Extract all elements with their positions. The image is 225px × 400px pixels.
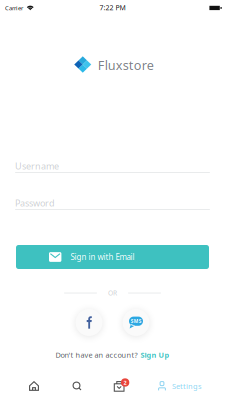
- button[interactable]: Don't have an account?: [55, 350, 169, 360]
- staticText: Fluxstore: [98, 56, 154, 74]
- staticText: 2: [124, 379, 127, 386]
- button[interactable]: Home: [12, 375, 55, 397]
- staticText: Don't have an account?: [55, 350, 137, 360]
- button[interactable]: Settings: [141, 375, 212, 397]
- staticText: Carrier: [5, 4, 23, 12]
- staticText: Sign Up: [140, 350, 169, 360]
- staticText: Sign in with Email: [70, 252, 134, 262]
- staticText: OR: [108, 288, 117, 298]
- staticText: Password: [15, 197, 55, 209]
- staticText: Settings: [172, 381, 202, 391]
- button[interactable]: Sign in with SMS: [122, 309, 149, 336]
- staticText: Username: [15, 160, 59, 172]
- button[interactable]: Sign in with Email: [16, 245, 209, 269]
- button[interactable]: Sign in with Facebook: [75, 309, 102, 336]
- staticText: 7:22 PM: [99, 3, 125, 12]
- button[interactable]: Cart: [98, 375, 141, 397]
- button[interactable]: Search: [55, 375, 98, 397]
- staticText: SMS: [131, 318, 142, 324]
